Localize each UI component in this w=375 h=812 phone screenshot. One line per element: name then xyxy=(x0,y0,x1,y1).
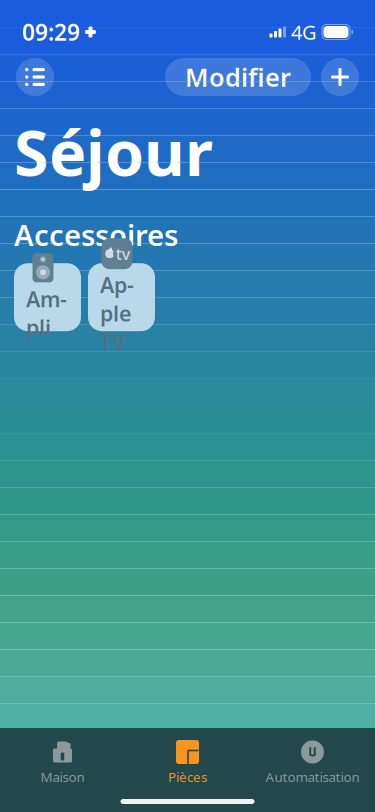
staticText: Ampli xyxy=(26,285,67,341)
button[interactable]: Maison xyxy=(0,735,125,790)
staticText: tv xyxy=(116,243,130,264)
staticText: Automatisation xyxy=(265,768,359,786)
button[interactable]: Modifier xyxy=(165,58,311,96)
staticText: 09:29 xyxy=(22,17,80,47)
staticText: Maison xyxy=(40,768,84,786)
button[interactable]: Automatisation xyxy=(250,735,375,790)
staticText: Pièces xyxy=(168,768,207,786)
button[interactable]: Ajouter xyxy=(321,58,359,96)
staticText: 4G xyxy=(291,19,317,45)
button[interactable]: Liste des pièces xyxy=(16,58,54,96)
staticText: Séjour xyxy=(14,110,213,193)
staticText: Modifier xyxy=(185,60,291,94)
button[interactable]: tv xyxy=(88,263,155,331)
button[interactable]: Pièces xyxy=(125,735,250,790)
button[interactable]: Ampli xyxy=(14,263,81,331)
staticText: Accessoires xyxy=(14,215,178,254)
staticText: Apple TV xyxy=(100,271,134,356)
